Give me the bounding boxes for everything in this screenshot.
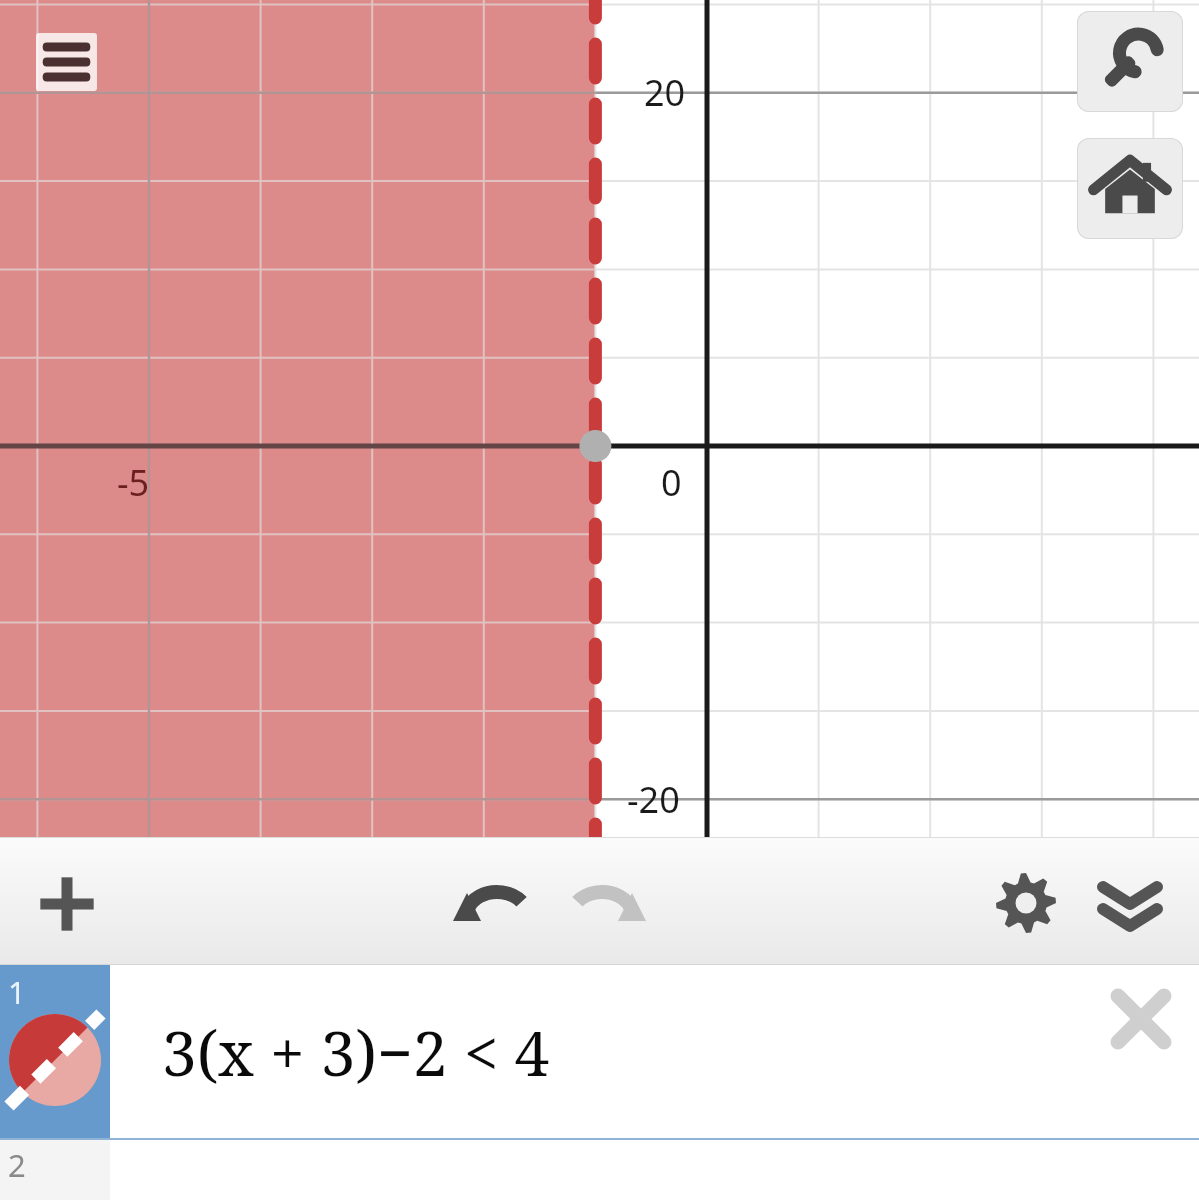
button[interactable]: Add expression <box>24 861 110 947</box>
staticText: -5 <box>117 458 150 507</box>
button[interactable]: Redo <box>557 859 647 949</box>
button[interactable]: Graph settings <box>982 859 1070 947</box>
button[interactable]: Settings <box>1077 11 1183 112</box>
button[interactable]: 1 <box>0 965 1199 1138</box>
staticText: -20 <box>627 775 680 824</box>
button[interactable]: Delete expression <box>1105 983 1177 1055</box>
button[interactable]: Hide keypad <box>1086 859 1174 947</box>
staticText: 20 <box>644 68 686 117</box>
button[interactable]: Home <box>1077 138 1183 239</box>
button[interactable]: Undo <box>452 859 542 949</box>
button[interactable]: 2 <box>0 1140 1199 1200</box>
staticText: 2 <box>8 1144 26 1186</box>
button[interactable]: Menu <box>36 33 97 91</box>
staticText: 0 <box>661 458 682 507</box>
staticText: 3(x + 3)−2 < 4 <box>162 1010 550 1094</box>
staticText: 1 <box>8 971 26 1013</box>
